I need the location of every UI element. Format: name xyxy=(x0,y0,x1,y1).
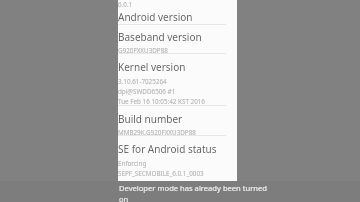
staticText: Tue Feb 16 10:05:42 KST 2016 xyxy=(118,97,205,105)
staticText: MMB29K.G920FXXU3DP88 xyxy=(118,128,196,135)
button[interactable]: Kernel version xyxy=(118,54,226,105)
staticText: SEPF_SECMOBILE_6.0.1_0003 xyxy=(118,169,204,178)
staticText: 3.10.61-7025264 xyxy=(118,77,167,86)
button[interactable]: 6.0.1 xyxy=(118,0,226,24)
staticText: Kernel version xyxy=(118,60,186,74)
staticText: Baseband version xyxy=(118,30,202,44)
staticText: dpi@SWDD6506 #1 xyxy=(118,87,176,96)
staticText: Enforcing xyxy=(118,159,147,168)
staticText: Build number xyxy=(118,112,183,126)
staticText: on xyxy=(119,194,129,202)
staticText: Android version xyxy=(118,10,193,24)
button[interactable]: Baseband version xyxy=(118,25,226,53)
button[interactable]: SE for Android status xyxy=(118,136,226,181)
staticText: 6.0.1 xyxy=(118,0,133,9)
staticText: G920FXXU3DP88 xyxy=(118,46,168,53)
staticText: Developer mode has already been turned xyxy=(119,183,267,193)
staticText: SE for Android status xyxy=(118,142,217,156)
button[interactable]: Build number xyxy=(118,106,226,135)
